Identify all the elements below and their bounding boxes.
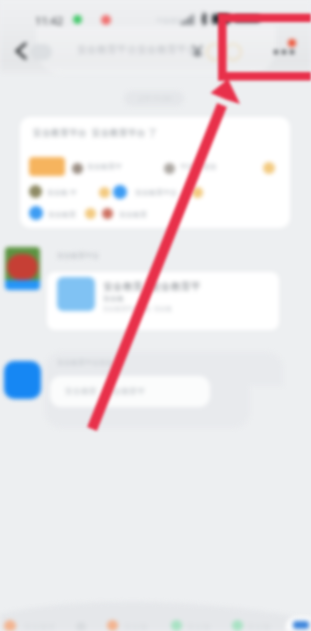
staticText: 安全教育 bbox=[119, 210, 147, 219]
staticText: 安全教育平台 安全教育平台 了 bbox=[33, 126, 158, 138]
button[interactable] bbox=[47, 272, 279, 330]
staticText: 11:42 bbox=[35, 13, 64, 28]
button[interactable]: Back bbox=[10, 40, 32, 62]
staticText: 安全教育 bbox=[48, 210, 76, 219]
staticText: 安全教育平 bbox=[87, 162, 122, 171]
button[interactable]: More options bbox=[269, 44, 301, 60]
staticText: 安全教育平台安全 bbox=[57, 358, 113, 367]
button[interactable] bbox=[20, 117, 290, 228]
staticText: 安全教育平台 bbox=[135, 188, 177, 197]
staticText: 安全教育平台 bbox=[57, 251, 99, 260]
staticText: 安全教育平台安全 安全教 bbox=[103, 305, 173, 313]
staticText: 中国移动 bbox=[156, 16, 184, 25]
staticText: 安全教育平台安全教育平台 bbox=[77, 43, 197, 56]
staticText: 安全教育 安全教育平 bbox=[103, 279, 201, 293]
staticText: 平台了 安全 bbox=[180, 162, 217, 172]
staticText: 安全教 bbox=[103, 294, 124, 303]
button[interactable] bbox=[50, 376, 210, 407]
staticText: 安全教 平 bbox=[47, 188, 77, 198]
staticText: 安全教育 安全教育平 bbox=[65, 385, 146, 396]
